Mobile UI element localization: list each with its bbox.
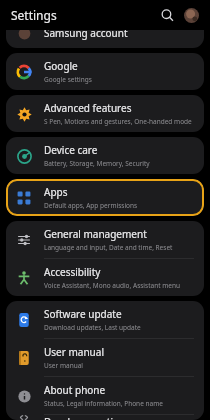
staticText: Software update <box>44 307 122 321</box>
staticText: Accessibility <box>44 265 101 279</box>
button[interactable]: Samsung account <box>6 30 204 48</box>
staticText: Developer options <box>44 415 131 420</box>
button[interactable]: Software update <box>6 301 204 338</box>
staticText: Download updates, Last update <box>44 323 141 332</box>
staticText: Device care <box>44 143 98 157</box>
button[interactable]: Account <box>181 5 201 25</box>
staticText: About phone <box>44 383 106 397</box>
button[interactable]: Apps <box>6 179 204 216</box>
staticText: Default apps, App permissions <box>44 201 138 210</box>
button[interactable]: About phone <box>6 377 204 414</box>
button[interactable]: User manual <box>6 339 204 376</box>
staticText: Samsung account <box>44 30 128 40</box>
staticText: Status, Legal information, Phone name <box>44 399 163 408</box>
staticText: Google settings <box>44 75 92 84</box>
button[interactable]: Search <box>157 5 177 25</box>
staticText: Settings <box>11 7 57 23</box>
staticText: General management <box>44 227 147 241</box>
staticText: User manual <box>44 345 104 359</box>
button[interactable]: Advanced features <box>6 95 204 132</box>
button[interactable]: Developer options <box>6 415 204 420</box>
staticText: Google <box>44 59 78 73</box>
button[interactable]: Google <box>6 53 204 90</box>
staticText: User manual <box>44 361 83 370</box>
staticText: Advanced features <box>44 101 132 115</box>
staticText: Language and input, Date and time, Reset <box>44 243 173 252</box>
staticText: S Pen, Motions and gestures, One-handed … <box>44 117 192 126</box>
staticText: Apps <box>44 185 68 199</box>
staticText: Battery, Storage, Memory, Security <box>44 159 150 168</box>
staticText: Voice Assistant, Mono audio, Assistant m… <box>44 281 180 290</box>
button[interactable]: General management <box>6 221 204 258</box>
button[interactable]: Accessibility <box>6 259 204 296</box>
button[interactable]: Device care <box>6 137 204 174</box>
